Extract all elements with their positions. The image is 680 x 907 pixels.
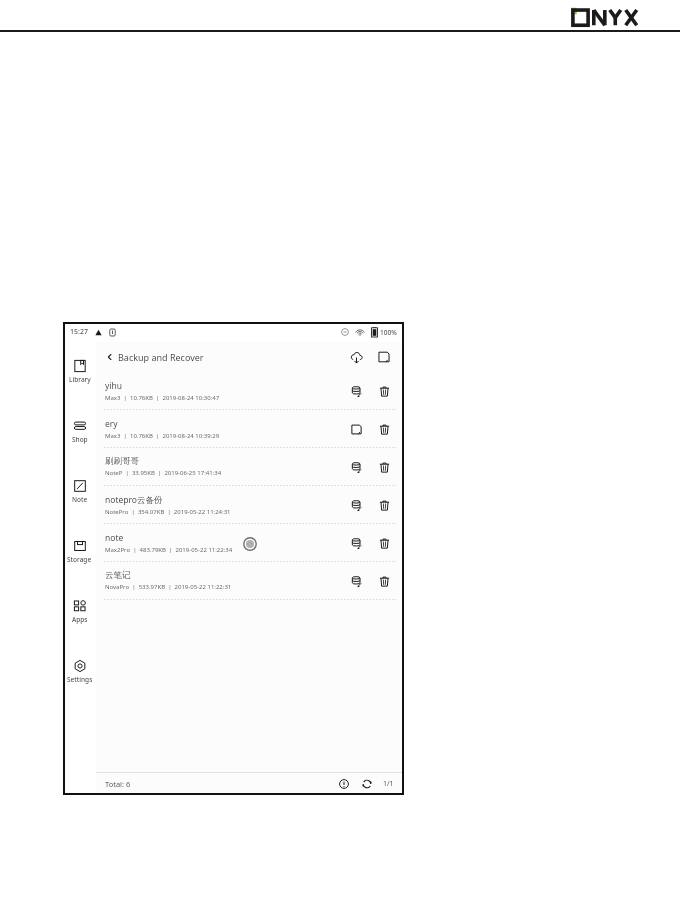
button[interactable]: note <box>96 524 404 562</box>
button[interactable]: Backup and Recover <box>105 348 205 366</box>
button[interactable]: Cloud backup <box>346 347 366 367</box>
staticText: Backup and Recover <box>118 351 204 363</box>
staticText: note <box>105 532 124 544</box>
staticText: yihu <box>105 380 123 392</box>
button[interactable]: Restore <box>346 495 366 515</box>
staticText: NotePro | 354.07KB | 2019-05-22 11:24:31 <box>105 508 231 516</box>
button[interactable]: 云笔记 <box>96 562 404 600</box>
button[interactable]: notepro云备份 <box>96 486 404 524</box>
button[interactable]: Delete <box>374 457 394 477</box>
button[interactable]: yihu <box>96 372 404 410</box>
button[interactable]: Restore <box>346 457 366 477</box>
staticText: notepro云备份 <box>105 494 163 506</box>
button[interactable]: Settings <box>63 656 96 687</box>
staticText: Apps <box>72 615 88 624</box>
staticText: 15:27 <box>70 327 88 337</box>
button[interactable]: 刷刷哥哥 <box>96 448 404 486</box>
staticText: 云笔记 <box>105 570 131 581</box>
button[interactable]: Save backup <box>374 347 394 367</box>
button[interactable]: Delete <box>374 571 394 591</box>
button[interactable]: Delete <box>374 419 394 439</box>
staticText: 1/1 <box>383 779 394 789</box>
staticText: Total: 6 <box>105 779 131 789</box>
staticText: 刷刷哥哥 <box>105 456 139 467</box>
staticText: Storage <box>67 555 92 564</box>
staticText: Max3 | 10.76KB | 2019-08-24 10:30:47 <box>105 394 220 402</box>
staticText: Note <box>72 495 88 504</box>
staticText: Max2Pro | 483.79KB | 2019-05-22 11:22:34 <box>105 546 233 554</box>
button[interactable]: Delete <box>374 495 394 515</box>
button[interactable]: Restore <box>346 381 366 401</box>
button[interactable]: Storage <box>63 536 96 567</box>
staticText: NoteP | 33.95KB | 2019-06-25 17:41:34 <box>105 469 222 477</box>
button[interactable]: Refresh <box>359 776 375 792</box>
staticText: ery <box>105 418 118 430</box>
button[interactable]: Delete <box>374 533 394 553</box>
staticText: Library <box>69 375 91 384</box>
staticText: Shop <box>72 435 88 444</box>
button[interactable]: Restore <box>346 571 366 591</box>
button[interactable]: Save <box>346 419 366 439</box>
button[interactable]: Shop <box>63 416 96 447</box>
button[interactable]: ery <box>96 410 404 448</box>
staticText: NovaPro | 533.97KB | 2019-05-22 11:22:31 <box>105 583 232 591</box>
button[interactable]: Delete <box>374 381 394 401</box>
button[interactable]: Library <box>63 356 96 387</box>
button[interactable]: Information <box>336 776 352 792</box>
button[interactable]: Apps <box>63 596 96 627</box>
staticText: 100% <box>380 328 397 337</box>
button[interactable]: Restore <box>346 533 366 553</box>
button[interactable]: Note <box>63 476 96 507</box>
staticText: Max3 | 10.76KB | 2019-08-24 10:39:29 <box>105 432 220 440</box>
staticText: Settings <box>67 675 93 684</box>
